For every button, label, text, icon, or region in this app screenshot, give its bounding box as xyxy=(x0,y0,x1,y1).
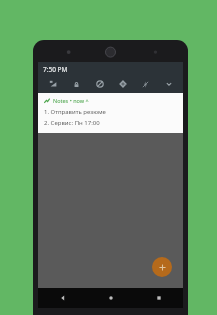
staticText: 1. Отправить резюме xyxy=(44,108,106,116)
button[interactable]: Do not disturb xyxy=(88,76,111,92)
button[interactable]: Flashlight xyxy=(134,76,157,92)
staticText: Notes • now ^ xyxy=(53,97,89,104)
button[interactable]: Expand quick settings xyxy=(157,76,180,92)
button[interactable]: Back xyxy=(38,288,87,308)
button[interactable]: Auto rotate xyxy=(111,76,134,92)
button[interactable]: Home xyxy=(87,288,135,308)
button[interactable]: Recent apps xyxy=(135,288,183,308)
staticText: 7:50 PM xyxy=(43,65,68,74)
button[interactable]: Add note xyxy=(152,257,172,277)
staticText: 2. Сервис: Пн 17:00 xyxy=(44,119,100,127)
button[interactable]: Mobile data xyxy=(41,76,65,92)
button[interactable]: Screen lock xyxy=(65,76,88,92)
button[interactable]: Notes • now ^ xyxy=(38,93,183,133)
